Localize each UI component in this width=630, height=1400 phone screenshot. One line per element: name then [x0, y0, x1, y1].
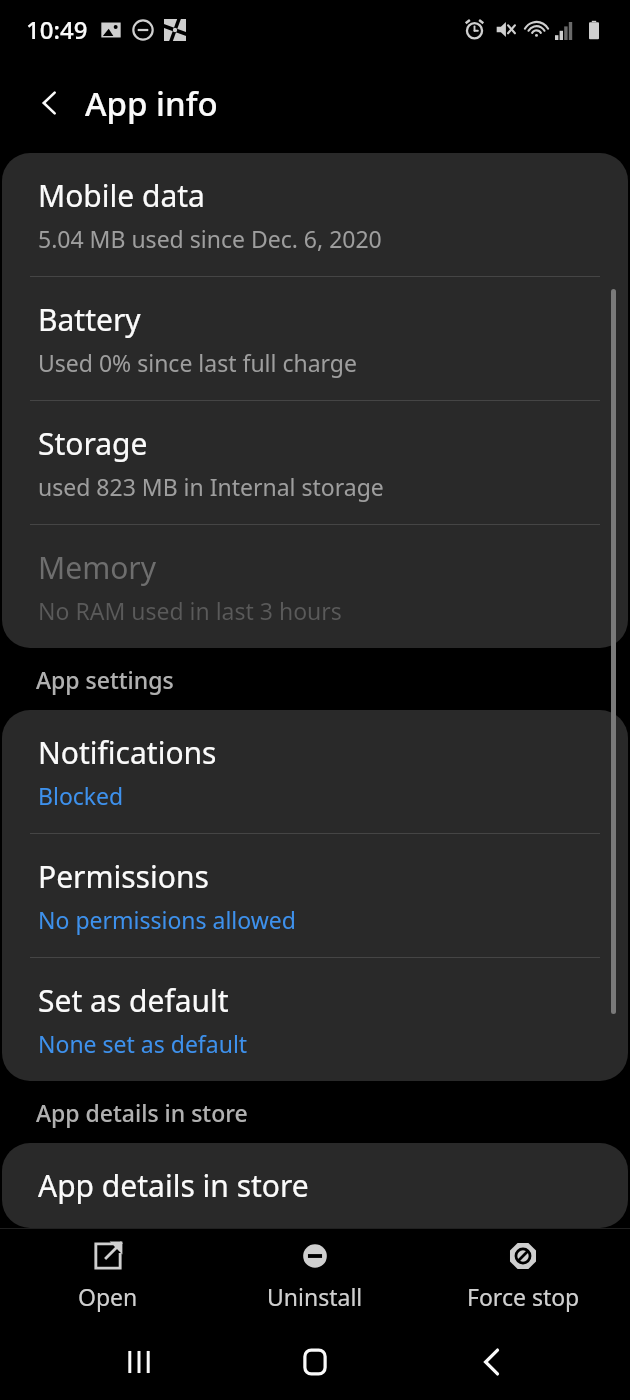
- button[interactable]: Recents: [101, 1324, 177, 1400]
- button[interactable]: Memory: [2, 525, 628, 648]
- staticText: Storage: [38, 423, 148, 464]
- button[interactable]: Battery: [2, 277, 628, 400]
- staticText: App info: [85, 81, 218, 126]
- button[interactable]: Back: [454, 1324, 530, 1400]
- button[interactable]: App details in store: [2, 1143, 628, 1228]
- staticText: No permissions allowed: [38, 904, 296, 935]
- staticText: None set as default: [38, 1028, 248, 1059]
- button[interactable]: Open: [8, 1232, 208, 1320]
- button[interactable]: Home: [277, 1324, 353, 1400]
- staticText: Used 0% since last full charge: [38, 347, 357, 378]
- staticText: No RAM used in last 3 hours: [38, 595, 342, 626]
- staticText: App details in store: [38, 1165, 309, 1206]
- staticText: Set as default: [38, 980, 229, 1021]
- button[interactable]: Permissions: [2, 834, 628, 957]
- staticText: used 823 MB in Internal storage: [38, 471, 384, 502]
- button[interactable]: Set as default: [2, 958, 628, 1081]
- button[interactable]: Notifications: [2, 710, 628, 833]
- button[interactable]: Mobile data: [2, 153, 628, 276]
- staticText: App settings: [36, 664, 174, 695]
- staticText: 5.04 MB used since Dec. 6, 2020: [38, 223, 382, 254]
- staticText: Notifications: [38, 732, 217, 773]
- staticText: Mobile data: [38, 175, 205, 216]
- button[interactable]: Force stop: [423, 1232, 623, 1320]
- staticText: Uninstall: [267, 1281, 363, 1312]
- button[interactable]: Uninstall: [215, 1232, 415, 1320]
- staticText: Memory: [38, 547, 157, 588]
- staticText: Permissions: [38, 856, 209, 897]
- staticText: 10:49: [26, 13, 88, 46]
- staticText: Force stop: [467, 1281, 580, 1312]
- staticText: Blocked: [38, 780, 124, 811]
- button[interactable]: Back: [24, 77, 76, 129]
- staticText: Open: [78, 1281, 138, 1312]
- button[interactable]: Storage: [2, 401, 628, 524]
- staticText: Battery: [38, 299, 141, 340]
- staticText: App details in store: [36, 1097, 248, 1128]
